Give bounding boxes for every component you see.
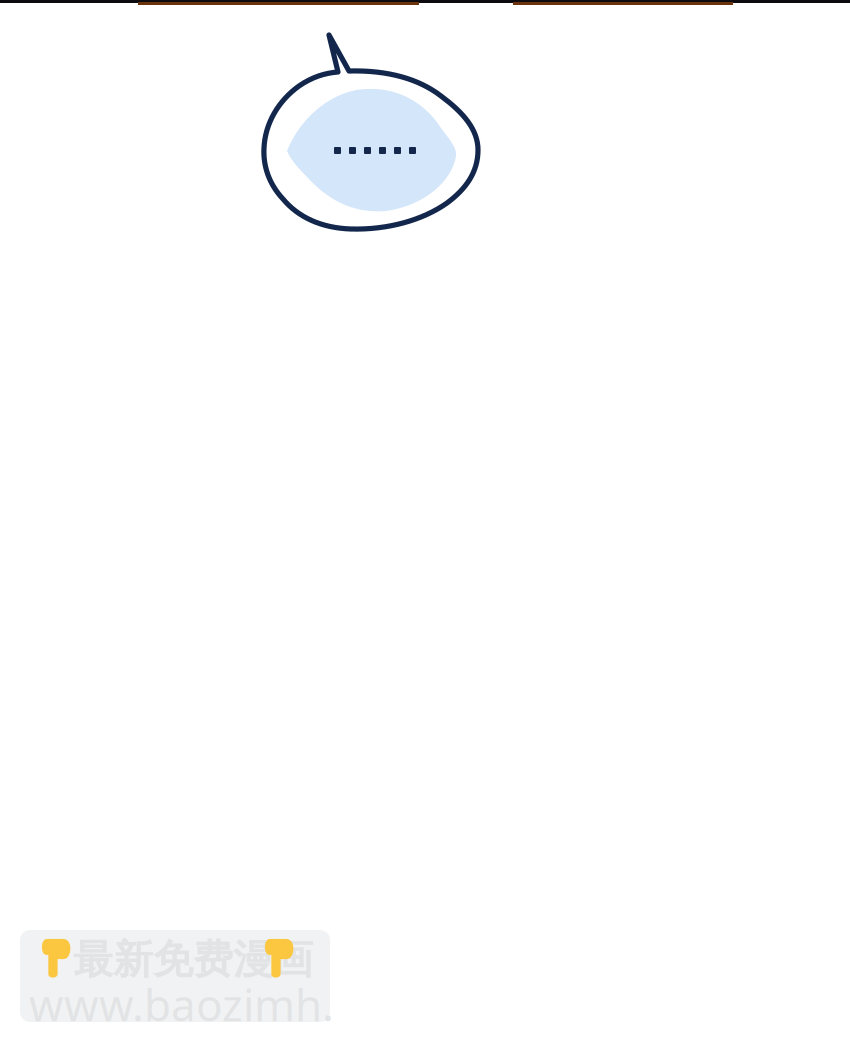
button[interactable]: 最新免费漫画	[20, 930, 330, 1022]
staticText: 最新免费漫画	[73, 935, 313, 984]
staticText: www.baozimh.com	[29, 975, 334, 1042]
